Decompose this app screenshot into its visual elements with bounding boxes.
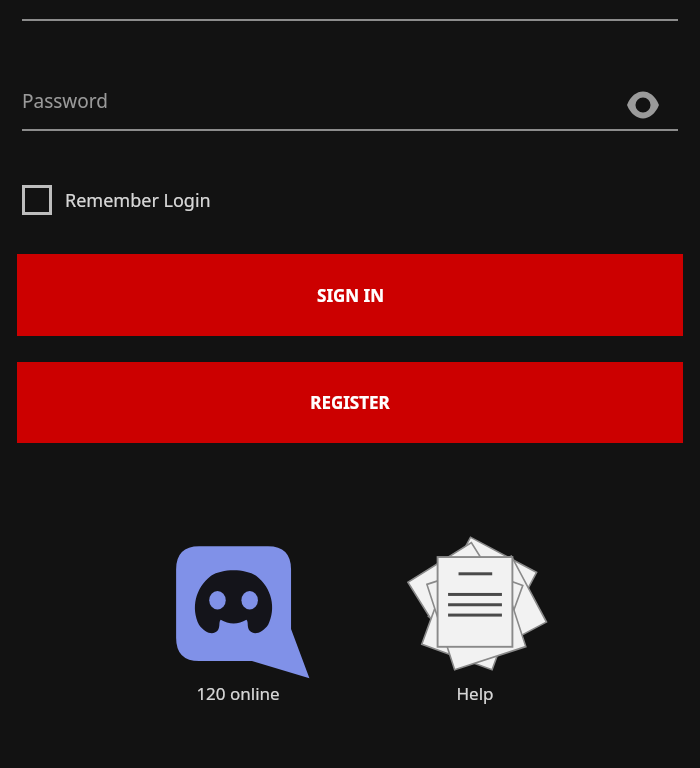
button[interactable]: Show password — [619, 81, 667, 129]
staticText: Password — [22, 88, 108, 114]
button[interactable]: REGISTER — [17, 362, 683, 443]
button[interactable]: SIGN IN — [17, 254, 683, 336]
button[interactable]: Remember Login — [22, 180, 211, 220]
staticText: 120 online — [196, 682, 280, 705]
button[interactable]: Username — [22, 0, 678, 22]
button[interactable]: Password — [22, 88, 678, 132]
button[interactable]: 120 online — [158, 538, 318, 705]
staticText: REGISTER — [310, 391, 390, 414]
staticText: SIGN IN — [317, 284, 384, 307]
staticText: Remember Login — [65, 188, 211, 213]
staticText: Help — [456, 682, 494, 705]
button[interactable]: Help — [400, 538, 550, 705]
